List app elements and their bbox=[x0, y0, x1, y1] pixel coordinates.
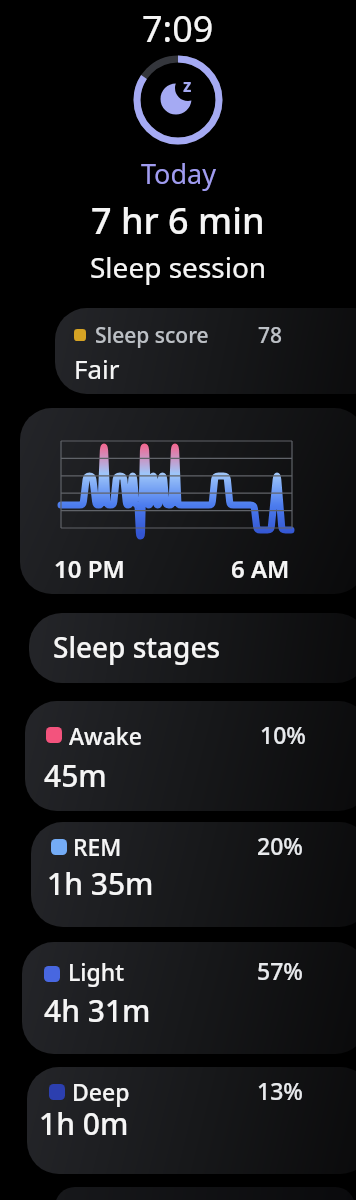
staticText: Sleep score bbox=[95, 321, 209, 350]
staticText: Sleep stages bbox=[53, 628, 221, 666]
staticText: 45m bbox=[44, 755, 107, 796]
staticText: z bbox=[183, 74, 192, 97]
staticText: Today bbox=[141, 155, 216, 192]
staticText: Light bbox=[68, 956, 124, 987]
staticText: 20% bbox=[257, 830, 303, 861]
staticText: 1h 0m bbox=[39, 1103, 129, 1144]
staticText: Awake bbox=[69, 720, 142, 751]
staticText: Sleep session bbox=[90, 248, 267, 286]
button[interactable]: Light bbox=[22, 942, 356, 1054]
staticText: 78 bbox=[258, 321, 283, 350]
staticText: 13% bbox=[257, 1075, 303, 1106]
staticText: Deep bbox=[72, 1076, 130, 1107]
button[interactable]: REM bbox=[31, 822, 356, 927]
staticText: 6 AM bbox=[231, 552, 290, 585]
staticText: 7 hr 6 min bbox=[91, 196, 265, 245]
staticText: 10 PM bbox=[54, 552, 125, 585]
button[interactable]: Awake bbox=[25, 701, 356, 811]
button[interactable]: 10 PM bbox=[20, 408, 356, 594]
staticText: 57% bbox=[257, 955, 303, 986]
button[interactable]: Deep bbox=[27, 1067, 356, 1174]
staticText: 4h 31m bbox=[44, 990, 151, 1031]
staticText: 10% bbox=[260, 719, 306, 750]
button[interactable]: Sleep score bbox=[55, 308, 356, 394]
staticText: 7:09 bbox=[142, 4, 214, 53]
staticText: REM bbox=[73, 831, 122, 862]
button[interactable]: Sleep stages bbox=[29, 613, 356, 683]
button[interactable] bbox=[55, 1187, 355, 1200]
staticText: Fair bbox=[74, 351, 120, 386]
staticText: 1h 35m bbox=[47, 863, 154, 904]
